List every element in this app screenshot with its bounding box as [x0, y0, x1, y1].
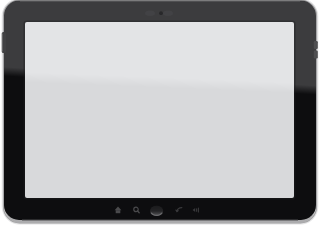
button[interactable] — [313, 40, 320, 60]
button[interactable] — [172, 204, 184, 216]
button[interactable] — [130, 204, 142, 216]
button[interactable] — [112, 204, 124, 216]
button[interactable] — [148, 204, 165, 217]
button[interactable] — [0, 31, 7, 54]
button[interactable] — [190, 204, 202, 216]
